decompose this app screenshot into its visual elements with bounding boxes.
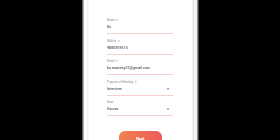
staticText: Ku [107,25,112,29]
staticText: ku.sawtney21@gmail.com [107,66,151,70]
button[interactable]: Host [107,100,173,117]
staticText: Gaurav [107,107,119,111]
other: Open dropdown [166,107,170,111]
button[interactable]: Next [119,131,162,140]
staticText: Name [107,18,115,22]
button[interactable]: Mobile [107,39,173,56]
staticText: Mobile [107,39,117,43]
staticText: Host [107,100,114,104]
staticText: Email [107,59,115,63]
staticText: * [116,18,118,23]
staticText: Purpose of Meeting [107,80,134,84]
button[interactable]: Purpose of Meeting [107,80,173,97]
staticText: * [118,39,120,44]
other: Open dropdown [166,87,170,91]
staticText: Interview [107,87,122,91]
staticText: * [135,80,137,85]
staticText: 9880359615 [107,46,128,50]
button[interactable]: Email [107,59,173,76]
staticText: * [116,59,118,64]
staticText: Next [136,136,145,140]
button[interactable]: Name [107,18,173,35]
